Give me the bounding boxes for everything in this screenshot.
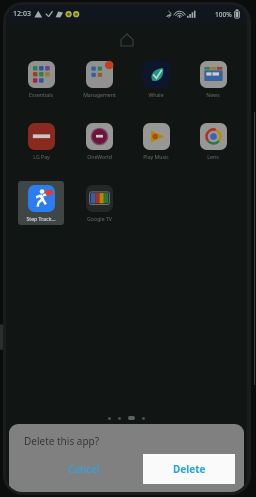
staticText: News <box>206 91 220 98</box>
staticText: LG Pay <box>33 153 50 160</box>
staticText: Essentials <box>29 91 53 98</box>
button[interactable]: OneWorld <box>76 119 122 163</box>
button[interactable]: Cancel <box>49 454 119 484</box>
button[interactable]: Play Music <box>133 119 179 163</box>
button[interactable]: Step Track... <box>18 181 64 225</box>
staticText: Delete this app? <box>24 434 100 448</box>
button[interactable]: News <box>190 57 236 101</box>
button[interactable]: LG Pay <box>18 119 64 163</box>
button[interactable]: Whale <box>133 57 179 101</box>
staticText: OneWorld <box>87 153 112 160</box>
staticText: 12:03 <box>13 9 31 19</box>
staticText: Delete <box>173 462 206 476</box>
staticText: Cancel <box>68 462 100 476</box>
button[interactable]: Management <box>76 57 122 101</box>
button[interactable]: Lens <box>190 119 236 163</box>
button[interactable]: Delete <box>143 454 235 484</box>
staticText: Management <box>83 91 116 98</box>
staticText: Lens <box>207 153 219 160</box>
staticText: Whale <box>148 91 164 98</box>
staticText: 100% <box>215 10 232 19</box>
button[interactable]: Google TV <box>76 181 122 225</box>
staticText: Step Track... <box>26 215 56 222</box>
button[interactable]: Essentials <box>18 57 64 101</box>
staticText: Google TV <box>87 215 112 222</box>
staticText: Play Music <box>143 153 169 160</box>
